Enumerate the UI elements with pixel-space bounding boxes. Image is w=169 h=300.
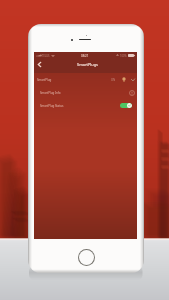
button[interactable]: Back bbox=[34, 58, 44, 71]
staticText: TELUS bbox=[42, 54, 50, 58]
staticText: SmartPlugs bbox=[77, 62, 98, 67]
staticText: ON bbox=[111, 78, 116, 82]
staticText: SmartPlug Info bbox=[40, 91, 61, 95]
button[interactable]: SmartPlug Status toggle bbox=[120, 103, 132, 108]
button[interactable]: SmartPlug bbox=[34, 73, 137, 86]
staticText: 100% bbox=[120, 54, 127, 58]
button[interactable]: SmartPlug Status bbox=[34, 99, 137, 112]
staticText: 08:21 bbox=[81, 54, 89, 58]
staticText: SmartPlug bbox=[37, 78, 52, 82]
other: Info bbox=[129, 90, 135, 96]
button[interactable]: SmartPlug Info bbox=[34, 86, 137, 99]
staticText: SmartPlug Status bbox=[40, 104, 64, 108]
